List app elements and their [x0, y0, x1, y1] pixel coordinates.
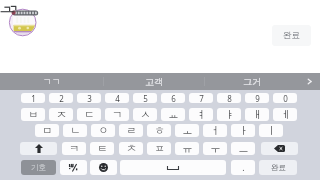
- staticText: 5: [143, 93, 148, 103]
- button[interactable]: 2: [49, 93, 73, 103]
- button[interactable]: 0: [273, 93, 297, 103]
- staticText: 2: [59, 93, 64, 103]
- staticText: ㅊ: [126, 142, 137, 155]
- staticText: ㅑ: [224, 108, 235, 121]
- button[interactable]: .: [231, 160, 255, 175]
- button[interactable]: ㅣ: [259, 124, 283, 137]
- button[interactable]: 6: [161, 93, 185, 103]
- button[interactable]: ㅇ: [91, 124, 115, 137]
- button[interactable]: ㅐ: [245, 108, 269, 121]
- button[interactable]: Backspace: [261, 142, 298, 155]
- staticText: ㅋ: [69, 142, 80, 155]
- button[interactable]: 4: [105, 93, 129, 103]
- button[interactable]: ㅁ: [35, 124, 59, 137]
- button[interactable]: 7: [189, 93, 213, 103]
- staticText: ㅁ: [42, 124, 53, 137]
- button[interactable]: ㅈ: [49, 108, 73, 121]
- button[interactable]: ㅎ: [147, 124, 171, 137]
- staticText: 7: [199, 93, 204, 103]
- button[interactable]: ㅊ: [119, 142, 143, 155]
- button[interactable]: ㅋ: [62, 142, 86, 155]
- staticText: 0: [283, 93, 288, 103]
- button[interactable]: 기호: [21, 160, 56, 175]
- staticText: .: [242, 162, 245, 174]
- button[interactable]: ㅔ: [273, 108, 297, 121]
- staticText: ㅛ: [168, 108, 179, 121]
- staticText: 그거: [243, 76, 261, 87]
- button[interactable]: Symbols: [60, 160, 87, 175]
- staticText: 8: [227, 93, 232, 103]
- button[interactable]: ㅑ: [217, 108, 241, 121]
- button[interactable]: ㅍ: [147, 142, 171, 155]
- staticText: 6: [171, 93, 176, 103]
- staticText: ㅅ: [140, 108, 151, 121]
- staticText: ㅠ: [182, 142, 193, 155]
- staticText: ㄹ: [126, 124, 137, 137]
- button[interactable]: ㅏ: [231, 124, 255, 137]
- button[interactable]: ㅌ: [90, 142, 114, 155]
- staticText: ㅐ: [252, 108, 263, 121]
- staticText: ㄴ: [70, 124, 81, 137]
- staticText: ㅡ: [238, 142, 249, 155]
- button[interactable]: 완료: [272, 25, 311, 46]
- staticText: 1: [31, 93, 36, 103]
- button[interactable]: 그거: [205, 73, 299, 90]
- staticText: ㅎ: [154, 124, 165, 137]
- button[interactable]: ㅡ: [231, 142, 255, 155]
- staticText: 완료: [271, 163, 286, 172]
- button[interactable]: 8: [217, 93, 241, 103]
- button[interactable]: ㅅ: [133, 108, 157, 121]
- staticText: ㅍ: [154, 142, 165, 155]
- staticText: ㅇ: [98, 124, 109, 137]
- staticText: 고객: [145, 76, 163, 87]
- staticText: ㄱㄱ: [43, 76, 61, 87]
- button[interactable]: ㅂ: [21, 108, 45, 121]
- button[interactable]: Sticker suggestion: [0, 0, 44, 40]
- staticText: 4: [115, 93, 120, 103]
- staticText: ㅣ: [266, 124, 277, 137]
- staticText: ㄷ: [84, 108, 95, 121]
- staticText: 기호: [31, 163, 46, 172]
- staticText: ㅕ: [196, 108, 207, 121]
- staticText: ㅓ: [210, 124, 221, 137]
- button[interactable]: More suggestions: [299, 73, 320, 90]
- button[interactable]: ㅗ: [175, 124, 199, 137]
- button[interactable]: ㅠ: [175, 142, 199, 155]
- button[interactable]: 9: [245, 93, 269, 103]
- staticText: ㅏ: [238, 124, 249, 137]
- button[interactable]: ㄱㄱ: [0, 73, 103, 90]
- button[interactable]: ㅓ: [203, 124, 227, 137]
- staticText: ㅂ: [28, 108, 39, 121]
- staticText: ㅔ: [280, 108, 291, 121]
- staticText: 9: [255, 93, 260, 103]
- button[interactable]: ㄹ: [119, 124, 143, 137]
- button[interactable]: 완료: [259, 160, 297, 175]
- button[interactable]: ㄷ: [77, 108, 101, 121]
- button[interactable]: ㅕ: [189, 108, 213, 121]
- staticText: ㅌ: [97, 142, 108, 155]
- button[interactable]: ㅛ: [161, 108, 185, 121]
- button[interactable]: Emoji: [90, 160, 117, 175]
- staticText: 완료: [283, 30, 300, 41]
- staticText: ㅗ: [182, 124, 193, 137]
- button[interactable]: ㄴ: [63, 124, 87, 137]
- button[interactable]: 1: [21, 93, 45, 103]
- button[interactable]: 5: [133, 93, 157, 103]
- staticText: ㄱ: [112, 108, 123, 121]
- button[interactable]: 고객: [104, 73, 204, 90]
- staticText: ㅜ: [210, 142, 221, 155]
- button[interactable]: Shift: [20, 142, 57, 155]
- button[interactable]: 3: [77, 93, 101, 103]
- button[interactable]: ㅜ: [203, 142, 227, 155]
- button[interactable]: Space: [120, 160, 226, 175]
- button[interactable]: ㄱ: [105, 108, 129, 121]
- staticText: 3: [87, 93, 92, 103]
- staticText: ㅈ: [56, 108, 67, 121]
